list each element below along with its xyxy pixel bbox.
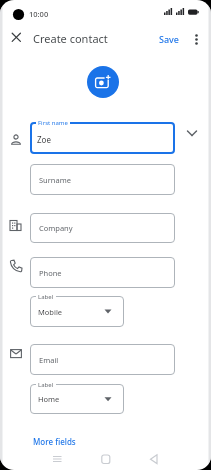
button[interactable] [189, 29, 204, 49]
staticText: Label [38, 381, 54, 389]
staticText: Label [38, 293, 54, 301]
staticText: First name [38, 119, 68, 127]
button[interactable] [8, 29, 24, 45]
button[interactable]: Email [30, 344, 175, 375]
button[interactable]: More fields [30, 433, 79, 450]
staticText: Create contact [33, 31, 108, 46]
staticText: Phone [39, 268, 62, 278]
staticText: Mobile [38, 307, 63, 317]
button[interactable]: Phone [30, 257, 175, 288]
staticText: More fields [33, 436, 76, 447]
staticText: Company [39, 223, 73, 233]
button[interactable]: Mobile [30, 296, 124, 327]
staticText: Surname [39, 175, 71, 185]
button[interactable] [87, 66, 119, 98]
button[interactable] [184, 125, 200, 141]
button[interactable]: Surname [30, 164, 175, 195]
button[interactable]: Home [30, 384, 124, 414]
staticText: 10:00 [29, 9, 49, 19]
button[interactable]: Company [30, 213, 175, 243]
staticText: Save [159, 33, 180, 45]
button[interactable] [98, 451, 114, 467]
button[interactable] [146, 451, 162, 467]
staticText: Email [39, 355, 59, 365]
button[interactable]: Save [152, 30, 186, 47]
staticText: Zoe [37, 134, 51, 145]
button[interactable] [49, 451, 65, 467]
button[interactable]: Zoe [30, 122, 175, 154]
staticText: Home [38, 394, 60, 404]
